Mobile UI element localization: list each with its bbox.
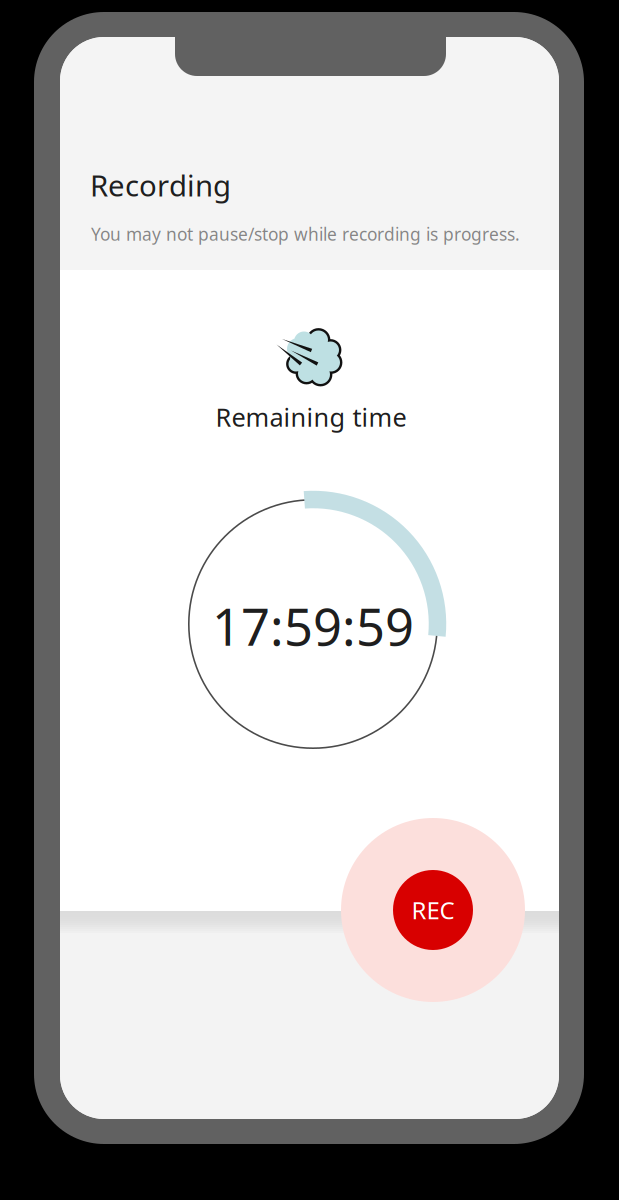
button[interactable]: REC bbox=[341, 818, 525, 1002]
staticText: 17:59:59 bbox=[212, 592, 414, 660]
staticText: You may not pause/stop while recording i… bbox=[91, 222, 520, 245]
staticText: REC bbox=[411, 894, 454, 926]
staticText: Remaining time bbox=[215, 400, 406, 434]
staticText: Recording bbox=[90, 165, 231, 204]
